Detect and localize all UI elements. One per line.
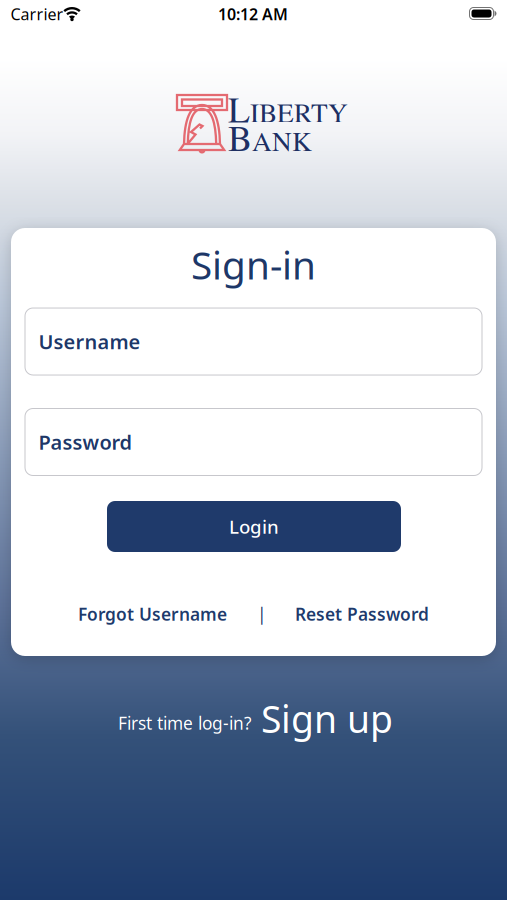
staticText: Sign-in (191, 239, 316, 290)
button[interactable]: Sign up (261, 694, 393, 743)
staticText: First time log-in? (118, 711, 252, 734)
staticText: Forgot Username (78, 602, 227, 625)
staticText: BANK (228, 114, 312, 160)
staticText: Username (38, 328, 140, 355)
button[interactable]: Reset Password (295, 602, 429, 625)
staticText: Password (38, 429, 132, 455)
secureTextField[interactable]: Password (24, 427, 482, 457)
staticText: 10:12 AM (218, 3, 288, 25)
staticText: LIBERTY (228, 85, 348, 132)
textField[interactable]: Username (24, 326, 482, 356)
button[interactable]: Login (107, 501, 401, 552)
staticText: Carrier (10, 3, 63, 25)
staticText: Username (24, 326, 135, 356)
staticText: Login (229, 514, 279, 539)
staticText: Sign up (261, 694, 393, 743)
staticText: Password (24, 427, 128, 457)
staticText: | (257, 602, 267, 625)
staticText: Reset Password (295, 602, 429, 625)
button[interactable]: Forgot Username (78, 602, 227, 625)
